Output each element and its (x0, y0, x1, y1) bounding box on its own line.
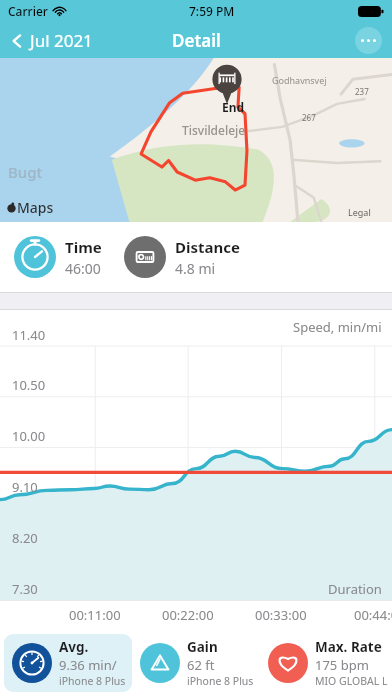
staticText: Bugt (8, 162, 43, 182)
staticText: 10.00 (12, 427, 46, 445)
staticText: 237 (355, 86, 369, 97)
staticText: 4.8 mi (175, 259, 216, 278)
staticText: iPhone 8 Plus (59, 674, 126, 688)
staticText: 10.50 (12, 376, 46, 394)
staticText: Legal (348, 206, 371, 218)
staticText: 00:44:0 (354, 606, 392, 624)
staticText: 7.30 (12, 580, 38, 598)
staticText: 175 bpm (315, 656, 369, 674)
staticText: Jul 2021 (30, 29, 93, 52)
staticText: 7:59 PM (189, 3, 235, 19)
staticText: 9.10 (12, 478, 38, 496)
staticText: Godhavnsvej (272, 74, 327, 86)
staticText: MIO GLOBAL L (315, 674, 388, 688)
button[interactable]: More options (355, 27, 382, 54)
staticText: Time (65, 237, 102, 257)
staticText: 46:00 (65, 259, 101, 278)
button[interactable]: Gain (132, 634, 260, 692)
button[interactable]: Time (14, 236, 102, 278)
staticText: End (222, 99, 245, 115)
staticText: 8.20 (12, 529, 38, 547)
staticText: Max. Rate (315, 638, 382, 656)
button[interactable]: Distance (124, 236, 240, 278)
staticText: iPhone 8 Plus (187, 674, 254, 688)
staticText: Tisvildeleje (182, 122, 246, 138)
staticText: 00:22:00 (162, 606, 214, 624)
button[interactable]: Max. Rate (260, 634, 388, 692)
staticText: 11.40 (12, 326, 46, 344)
staticText: 9.36 min/mi (59, 656, 132, 674)
button[interactable]: Avg. Speed (4, 634, 132, 692)
staticText: Detail (172, 29, 221, 52)
staticText: 62 ft (187, 656, 215, 674)
staticText: Avg. Speed (59, 638, 132, 656)
staticText: Carrier (8, 3, 48, 19)
staticText: 00:33:00 (255, 606, 307, 624)
staticText: Duration (328, 580, 382, 598)
staticText: 267 (302, 112, 316, 123)
staticText: Speed, min/mi (293, 318, 382, 336)
staticText: Maps (17, 198, 54, 217)
staticText: Gain (187, 638, 218, 656)
button[interactable]: Route map (0, 58, 392, 222)
staticText: Distance (175, 237, 240, 257)
staticText: 00:11:00 (69, 606, 121, 624)
button[interactable]: Jul 2021 (0, 25, 103, 56)
